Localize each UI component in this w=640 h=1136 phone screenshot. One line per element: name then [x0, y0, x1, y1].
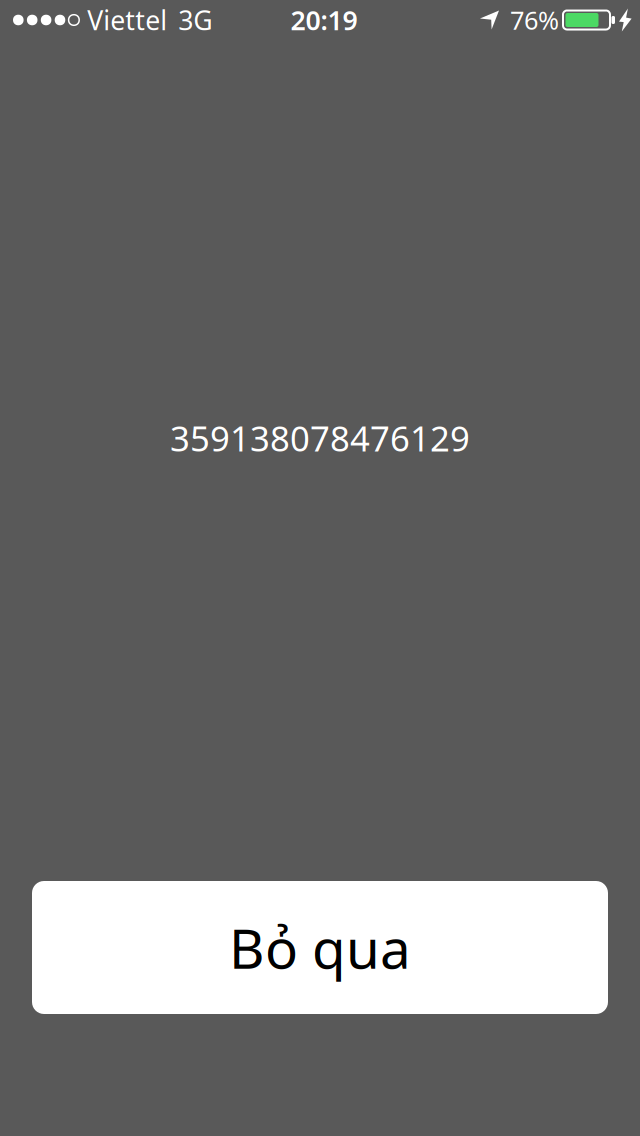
staticText: 359138078476129 [170, 415, 470, 461]
button[interactable]: Bỏ qua [32, 881, 608, 1014]
staticText: Bỏ qua [229, 911, 411, 984]
staticText: Viettel [87, 2, 167, 38]
staticText: 76% [510, 3, 559, 37]
staticText: 3G [178, 2, 212, 38]
staticText: 20:19 [290, 2, 357, 38]
